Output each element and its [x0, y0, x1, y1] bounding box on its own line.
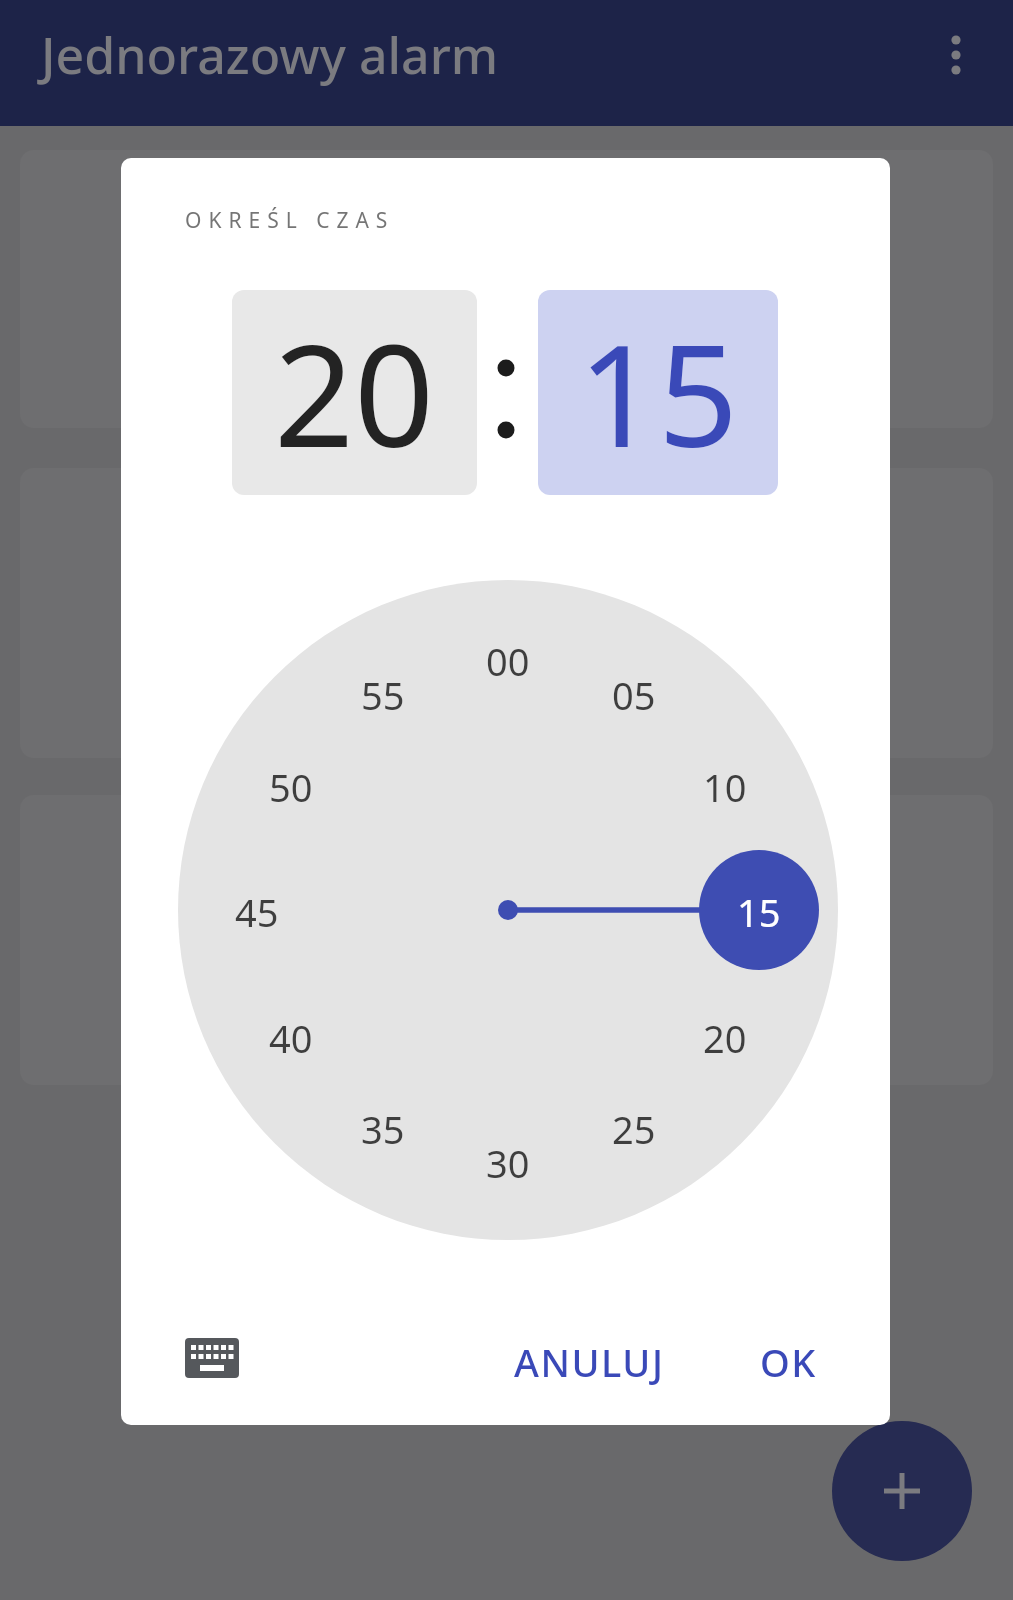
button[interactable]: [165, 1318, 259, 1398]
staticText: 55: [361, 669, 405, 717]
button[interactable]: 45: [217, 886, 297, 934]
button[interactable]: [20, 150, 993, 428]
button[interactable]: 05: [594, 669, 674, 717]
button[interactable]: 25: [594, 1103, 674, 1151]
staticText: 25: [612, 1103, 656, 1151]
button[interactable]: ANULUJ: [509, 1332, 669, 1392]
button[interactable]: 30: [468, 1137, 548, 1185]
staticText: 15: [578, 297, 739, 488]
button[interactable]: 50: [251, 761, 331, 809]
button[interactable]: 10: [685, 761, 765, 809]
button[interactable]: 15: [719, 886, 799, 934]
staticText: Jednorazowy alarm: [41, 21, 499, 89]
button[interactable]: 20: [685, 1012, 765, 1060]
button[interactable]: 55: [343, 669, 423, 717]
staticText: 35: [361, 1103, 405, 1151]
staticText: OKREŚL CZAS: [185, 206, 395, 235]
button[interactable]: 15: [538, 290, 778, 495]
staticText: 20: [703, 1012, 747, 1060]
staticText: 50: [269, 761, 313, 809]
staticText: 05: [612, 669, 656, 717]
staticText: ANULUJ: [514, 1336, 665, 1388]
button[interactable]: [20, 468, 993, 758]
button[interactable]: [832, 1421, 972, 1561]
staticText: OK: [760, 1336, 817, 1388]
button[interactable]: [20, 795, 993, 1085]
button[interactable]: 35: [343, 1103, 423, 1151]
button[interactable]: 40: [251, 1012, 331, 1060]
button[interactable]: OK: [728, 1332, 848, 1392]
button[interactable]: [908, 7, 1004, 103]
button[interactable]: 20: [232, 290, 477, 495]
staticText: 45: [235, 886, 279, 934]
staticText: 10: [703, 761, 747, 809]
staticText: 30: [486, 1137, 530, 1185]
staticText: 00: [486, 635, 530, 683]
staticText: 15: [737, 886, 781, 934]
button[interactable]: 00: [468, 635, 548, 683]
staticText: 40: [269, 1012, 313, 1060]
staticText: 20: [274, 297, 435, 488]
